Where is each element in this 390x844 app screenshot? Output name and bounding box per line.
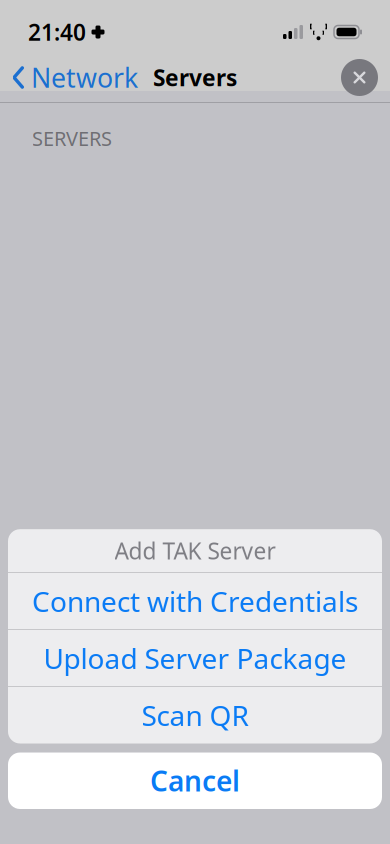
button[interactable]: Network <box>0 54 138 101</box>
staticText: Add TAK Server <box>114 536 275 566</box>
staticText: Network <box>31 60 138 95</box>
staticText: Connect with Credentials <box>32 582 358 620</box>
staticText: Upload Server Package <box>43 640 346 677</box>
staticText: 21:40 <box>28 17 86 47</box>
button[interactable]: Cancel <box>8 752 382 809</box>
staticText: Cancel <box>150 762 240 799</box>
button[interactable]: Upload Server Package <box>8 630 382 686</box>
staticText: SERVERS <box>32 125 112 152</box>
staticText: Scan QR <box>141 697 248 734</box>
button[interactable]: Close <box>341 53 390 102</box>
button[interactable]: Scan QR <box>8 687 382 743</box>
button[interactable]: Connect with Credentials <box>8 573 382 629</box>
staticText: Servers <box>153 62 237 92</box>
